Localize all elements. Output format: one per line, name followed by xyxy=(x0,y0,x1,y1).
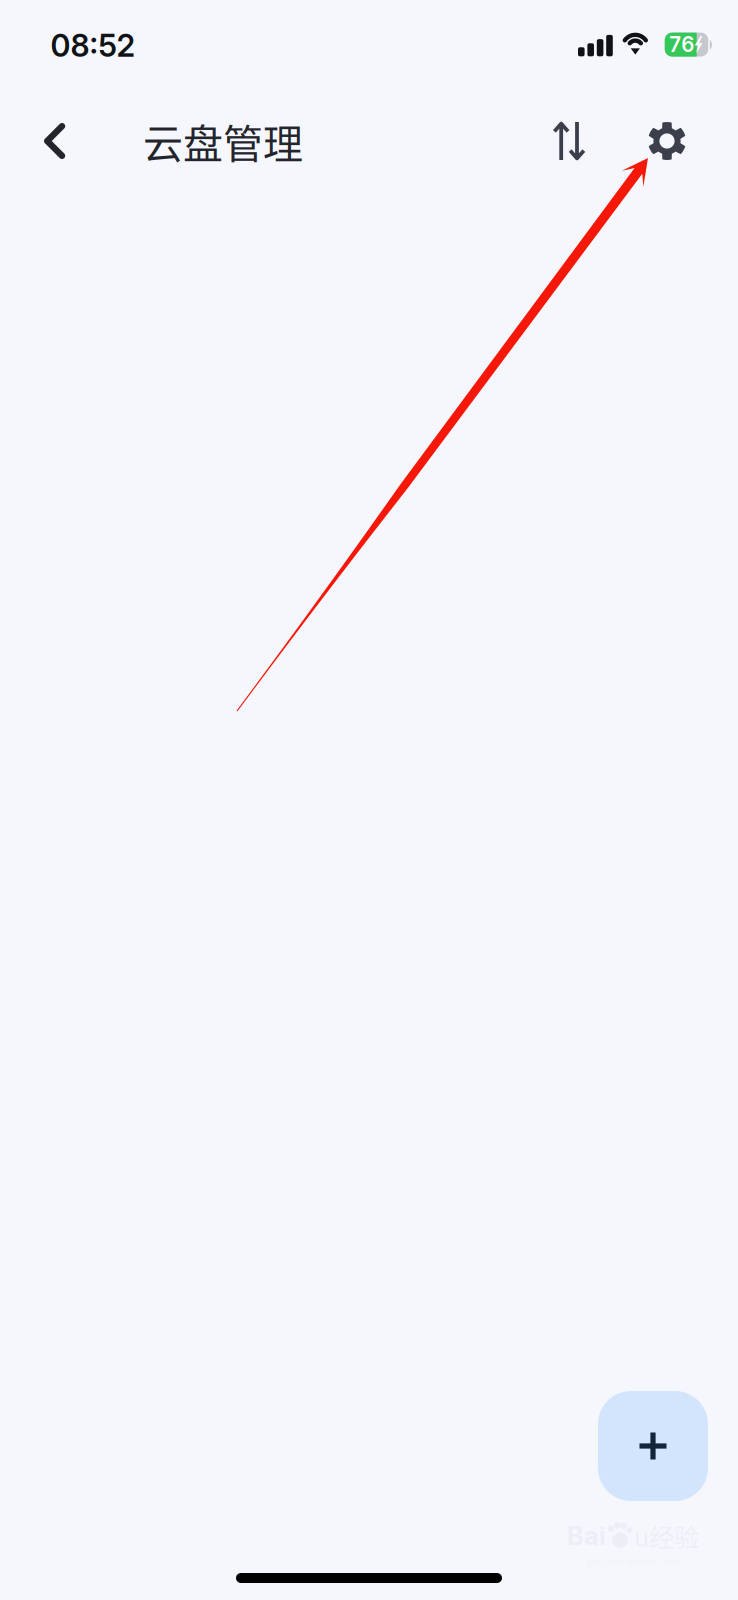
button[interactable]: Settings xyxy=(630,96,704,186)
staticText: 76 xyxy=(669,32,694,57)
staticText: 云盘管理 xyxy=(143,112,303,170)
button[interactable]: Sort xyxy=(532,96,606,186)
staticText: Bai xyxy=(567,1520,606,1551)
button[interactable]: 云盘管理 xyxy=(87,96,325,186)
button[interactable]: Add xyxy=(598,1391,708,1501)
staticText: u经验 xyxy=(634,1517,699,1554)
staticText: 08:52 xyxy=(50,27,135,64)
button[interactable]: Back xyxy=(22,96,87,186)
